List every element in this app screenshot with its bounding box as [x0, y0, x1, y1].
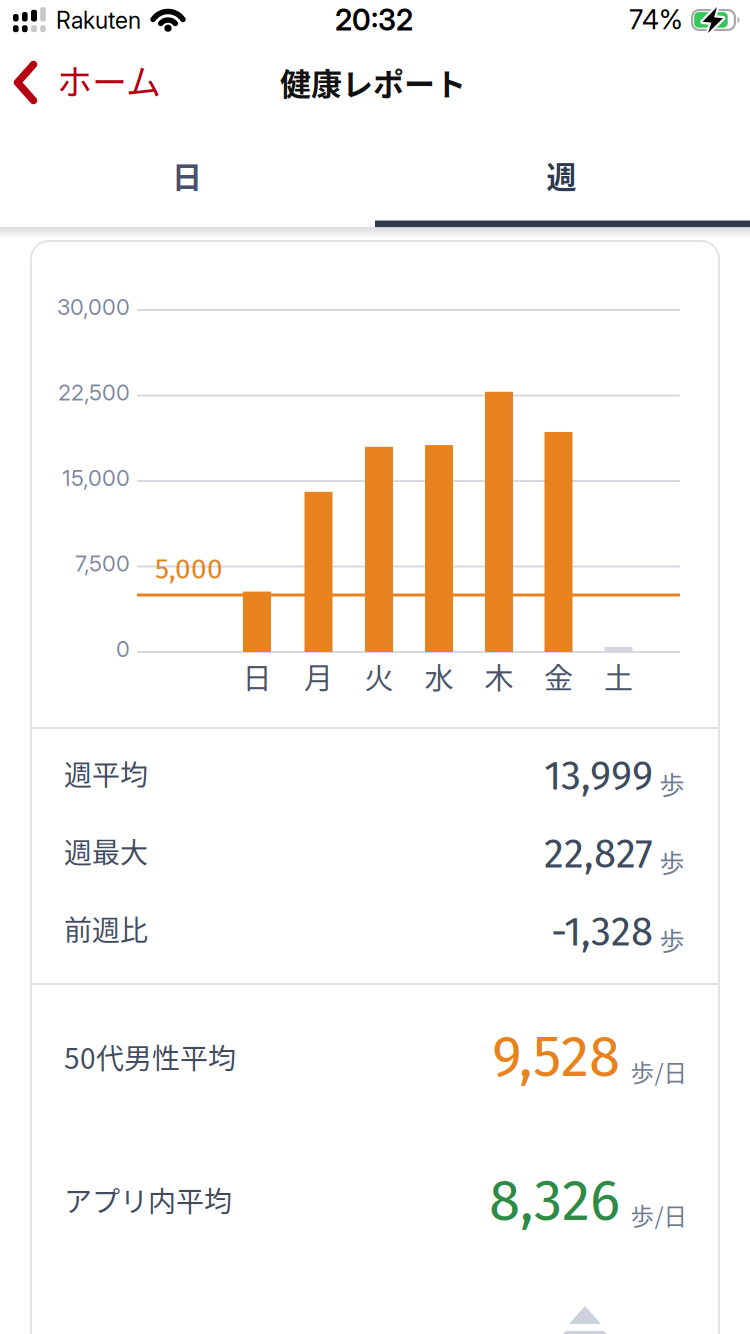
staticText: 8,326: [489, 1167, 620, 1235]
button[interactable]: ホーム: [0, 0, 750, 1334]
staticText: アプリ内平均: [64, 1179, 232, 1220]
staticText: 歩: [659, 765, 684, 802]
staticText: 50代男性平均: [64, 1036, 236, 1077]
staticText: ホーム: [57, 55, 161, 105]
staticText: 週最大: [64, 831, 148, 871]
staticText: 歩/日: [630, 1054, 687, 1088]
staticText: 74%: [629, 3, 683, 36]
staticText: 健康レポート: [280, 60, 466, 104]
staticText: 22,827: [544, 830, 653, 878]
staticText: 9,528: [492, 1023, 620, 1091]
staticText: 22,500: [58, 379, 130, 406]
staticText: 週平均: [64, 753, 148, 793]
staticText: 週: [546, 153, 576, 197]
staticText: 0: [116, 636, 130, 662]
staticText: 前週比: [64, 908, 148, 949]
staticText: 5,000: [155, 552, 223, 586]
button[interactable]: 週: [0, 0, 750, 1334]
staticText: 木: [484, 655, 513, 697]
staticText: 20:32: [335, 2, 413, 38]
staticText: 30,000: [57, 294, 130, 320]
staticText: -1,328: [551, 908, 653, 956]
staticText: 火: [364, 655, 393, 697]
staticText: 月: [304, 655, 333, 697]
staticText: 金: [544, 655, 573, 697]
button[interactable]: 日: [0, 0, 750, 1334]
staticText: Rakuten: [56, 7, 141, 34]
staticText: 歩/日: [630, 1198, 687, 1232]
staticText: 7,500: [75, 550, 130, 577]
staticText: 水: [424, 655, 453, 697]
staticText: 土: [604, 655, 633, 697]
staticText: 日: [242, 655, 271, 697]
staticText: 歩: [659, 843, 684, 880]
staticText: 15,000: [62, 465, 130, 491]
staticText: 日: [172, 153, 202, 197]
staticText: 13,999: [544, 752, 653, 800]
staticText: 歩: [659, 921, 684, 958]
